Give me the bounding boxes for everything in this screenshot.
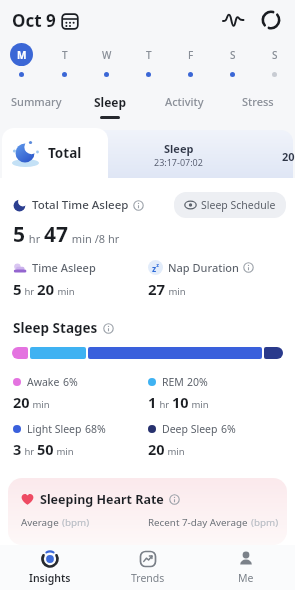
staticText: zz [152,261,159,275]
staticText: 20 [148,439,165,459]
staticText: min [165,445,185,458]
staticText: 20 [37,279,55,299]
button[interactable]: Me [197,545,295,590]
staticText: Nap Duration [168,260,239,275]
staticText: 6% [63,375,78,389]
staticText: Me [238,571,254,585]
staticText: Time Asleep [32,260,96,275]
button[interactable]: Summary [0,86,73,122]
staticText: S [230,48,236,62]
staticText: 23:17-07:02 [154,156,203,168]
staticText: hr [22,285,37,298]
staticText: Total Time Asleep [32,197,129,213]
staticText: F [188,48,194,62]
button[interactable]: S [211,43,253,86]
staticText: min /8 hr [69,231,120,246]
staticText: (bpm) [62,516,90,529]
staticText: min [30,398,50,411]
staticText: 68% [85,422,106,436]
staticText: 20:2 [282,149,295,164]
staticText: REM [162,375,187,389]
button[interactable]: W [85,43,127,86]
staticText: 10 [172,392,189,412]
staticText: Average [21,516,62,529]
staticText: hr [22,445,37,458]
staticText: Awake [27,375,63,389]
staticText: Sleeping Heart Rate [40,491,164,508]
button[interactable]: Sleep Schedule [174,192,286,218]
staticText: Sleep [94,94,127,110]
staticText: min [55,285,75,298]
staticText: 20 [13,392,30,412]
staticText: Stress [242,94,274,109]
button[interactable]: S [253,43,295,86]
staticText: Sleep Schedule [201,198,276,212]
button[interactable]: M [0,43,43,86]
staticText: hr [26,231,44,246]
staticText: Summary [11,94,62,109]
button[interactable]: Sleeping Heart Rate [8,478,287,545]
button[interactable]: T [43,43,85,86]
button[interactable]: Activity [147,86,221,122]
button[interactable]: F [169,43,211,86]
button[interactable]: Oct 9 [12,9,79,32]
staticText: Oct 9 [12,9,56,32]
staticText: min [166,285,186,298]
button[interactable]: Total [2,128,108,178]
staticText: Activity [165,94,204,109]
button[interactable]: Sleep [131,130,226,178]
button[interactable]: T [127,43,169,86]
staticText: Recent 7-day Average [148,516,251,529]
staticText: Sleep Stages [13,319,98,337]
staticText: 27 [148,279,166,299]
staticText: (bpm) [251,516,279,529]
staticText: Deep Sleep [162,422,221,436]
staticText: Trends [131,571,165,585]
staticText: 6% [221,422,236,436]
staticText: 5 [13,220,26,249]
staticText: Sleep [164,141,194,156]
staticText: Total [48,144,82,162]
staticText: 3 [13,439,22,459]
staticText: Light Sleep [27,422,85,436]
staticText: S [272,48,278,62]
staticText: min [189,398,209,411]
staticText: W [102,48,112,62]
staticText: 5 [13,279,22,299]
button[interactable]: Stress [221,86,295,122]
button[interactable]: Trends [99,545,197,590]
staticText: M [17,48,27,62]
staticText: Insights [29,571,71,585]
button[interactable] [261,10,281,30]
button[interactable]: Sleep [73,86,147,122]
button[interactable] [222,10,246,30]
staticText: T [146,48,152,62]
staticText: T [62,48,68,62]
staticText: 20% [187,375,208,389]
staticText: hr [157,398,172,411]
button[interactable]: Insights [0,545,99,590]
staticText: 47 [44,220,69,249]
staticText: 50 [37,439,54,459]
staticText: 1 [148,392,157,412]
staticText: min [54,445,74,458]
